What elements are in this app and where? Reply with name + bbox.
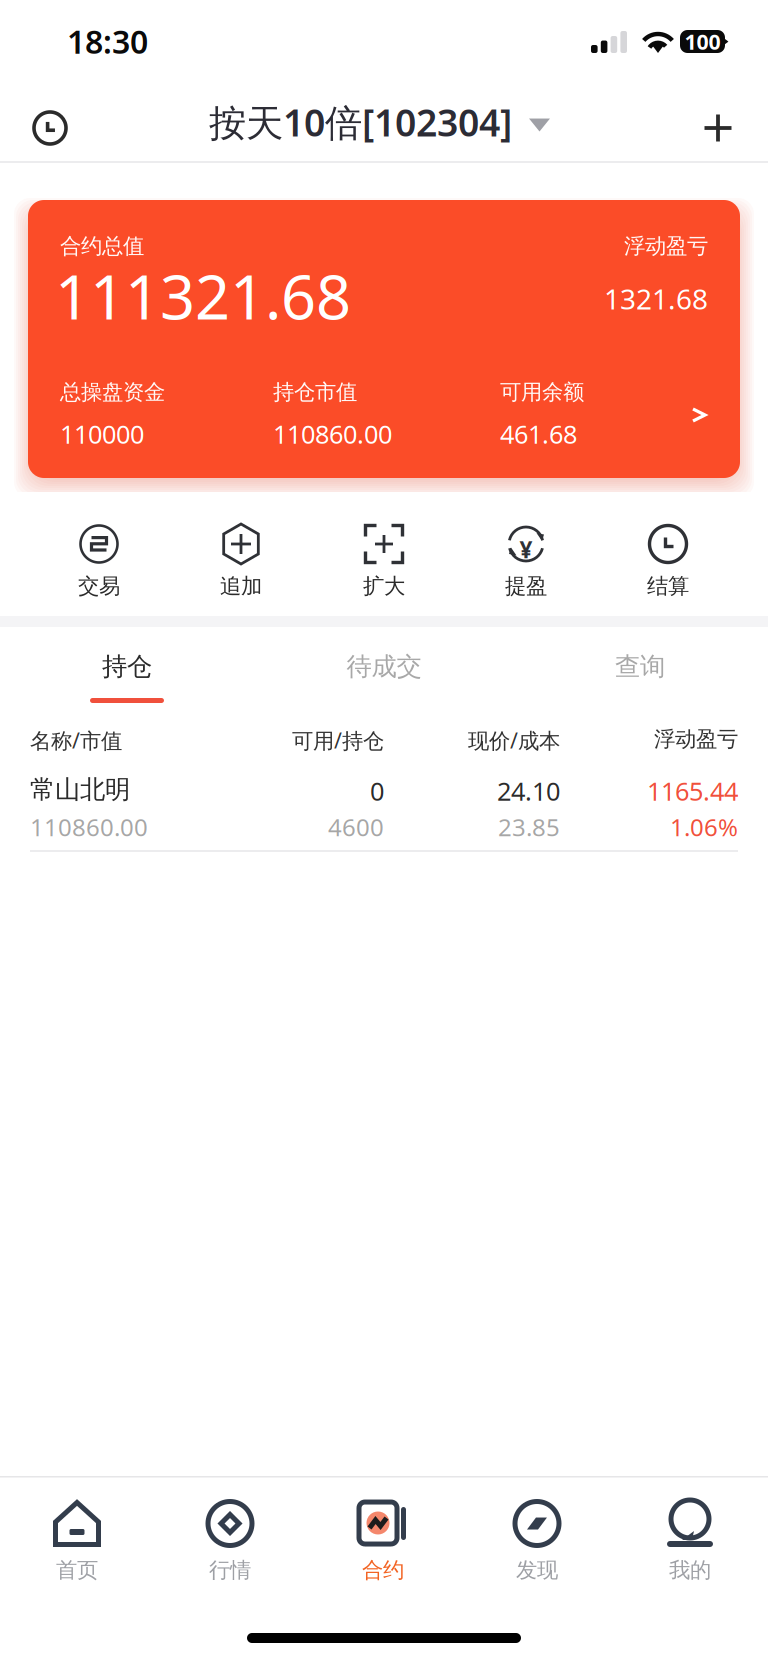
staticText: 18:30 xyxy=(67,20,148,62)
staticText: 可用余额 xyxy=(500,379,584,405)
staticText: 110860.00 xyxy=(273,417,392,451)
button[interactable]: 我的 xyxy=(620,1500,760,1583)
staticText: 总操盘资金 xyxy=(60,379,165,405)
button[interactable]: History xyxy=(25,103,75,153)
staticText: ¥ xyxy=(519,534,532,565)
button[interactable]: 扩大 xyxy=(324,524,444,599)
button[interactable]: 合约 xyxy=(313,1500,453,1583)
button[interactable]: Add xyxy=(692,103,744,153)
staticText: 持仓 xyxy=(102,651,152,682)
button[interactable]: 待成交 xyxy=(294,627,474,718)
button[interactable]: 查询 xyxy=(550,627,730,718)
button[interactable]: 发现 xyxy=(467,1500,607,1583)
button[interactable]: 合约总值 xyxy=(28,200,740,478)
staticText: 名称/市值 xyxy=(30,726,122,754)
staticText: 现价/成本 xyxy=(468,726,560,754)
staticText: 结算 xyxy=(647,573,689,599)
button[interactable]: 结算 xyxy=(608,524,728,599)
staticText: 持仓市值 xyxy=(273,379,357,405)
button[interactable]: 追加 xyxy=(181,524,301,599)
staticText: 提盈 xyxy=(505,573,547,599)
staticText: 浮动盈亏 xyxy=(654,726,738,752)
button[interactable]: 按天10倍[102304] xyxy=(209,96,550,148)
staticText: 110000 xyxy=(60,417,144,451)
staticText: 461.68 xyxy=(500,417,577,451)
staticText: 1321.68 xyxy=(604,280,708,317)
staticText: 100 xyxy=(684,27,720,56)
staticText: 24.10 xyxy=(497,774,560,808)
staticText: 扩大 xyxy=(363,573,405,599)
button[interactable]: 常山北明 xyxy=(0,774,768,856)
staticText: 浮动盈亏 xyxy=(624,233,708,259)
staticText: 发现 xyxy=(516,1557,558,1583)
staticText: 交易 xyxy=(78,573,120,599)
staticText: 110860.00 xyxy=(30,811,148,843)
staticText: 1165.44 xyxy=(647,774,738,808)
staticText: 0 xyxy=(370,774,384,808)
button[interactable]: 首页 xyxy=(7,1500,147,1583)
staticText: 合约 xyxy=(362,1557,404,1583)
staticText: 待成交 xyxy=(346,651,421,682)
staticText: 可用/持仓 xyxy=(292,726,384,754)
button[interactable]: ¥ xyxy=(466,524,586,599)
staticText: 首页 xyxy=(56,1557,98,1583)
button[interactable]: 行情 xyxy=(160,1500,300,1583)
staticText: 111321.68 xyxy=(55,255,351,336)
staticText: 1.06% xyxy=(670,811,738,843)
staticText: 查询 xyxy=(615,651,665,682)
staticText: 合约总值 xyxy=(60,233,144,259)
staticText: 行情 xyxy=(209,1557,251,1583)
staticText: 我的 xyxy=(669,1557,711,1583)
button[interactable]: 持仓 xyxy=(37,627,217,718)
staticText: 4600 xyxy=(328,811,384,843)
staticText: 常山北明 xyxy=(30,774,130,805)
staticText: 23.85 xyxy=(498,811,560,843)
button[interactable]: 交易 xyxy=(39,524,159,599)
staticText: 追加 xyxy=(220,573,262,599)
staticText: 按天10倍[102304] xyxy=(209,97,512,147)
